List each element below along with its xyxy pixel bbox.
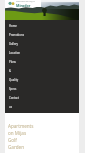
staticText: Contact [9, 96, 19, 100]
button[interactable]: Promotions [5, 30, 79, 39]
staticText: Home [9, 24, 17, 28]
button[interactable]: Specs [5, 84, 79, 93]
button[interactable]: Location [5, 48, 79, 57]
button[interactable]: Home [5, 21, 79, 30]
staticText: Specs [9, 87, 17, 91]
staticText: MIRADOR DE MIJAS [16, 0, 35, 3]
button[interactable]: us [5, 102, 79, 111]
staticText: & [9, 69, 11, 73]
staticText: Garden [8, 144, 24, 150]
staticText: Apartments [8, 123, 34, 129]
staticText: us [9, 105, 12, 109]
staticText: Golf [8, 137, 17, 143]
staticText: Mirador [16, 3, 31, 7]
button[interactable]: & [5, 66, 79, 75]
staticText: Quality [9, 78, 19, 82]
button[interactable]: Contact [5, 93, 79, 102]
staticText: Location [9, 51, 21, 55]
button[interactable]: Quality [5, 75, 79, 84]
staticText: on Mijas [8, 130, 27, 136]
staticText: Gallery [9, 42, 19, 46]
staticText: Promotions [9, 33, 24, 37]
button[interactable]: Gallery [5, 39, 79, 48]
button[interactable]: Mirador de Mijas home [5, 0, 41, 7]
staticText: Plans [9, 60, 16, 64]
button[interactable]: Plans [5, 57, 79, 66]
